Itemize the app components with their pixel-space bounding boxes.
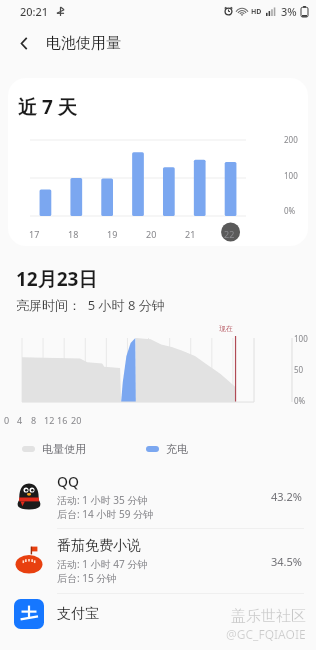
staticText: 0% (294, 395, 306, 406)
button[interactable]: 近 7 天 (8, 78, 308, 246)
staticText: 50 (294, 364, 304, 375)
button[interactable]: Back (8, 27, 40, 59)
staticText: 充电 (166, 442, 188, 456)
button[interactable]: 支付宝 (0, 594, 316, 634)
staticText: 支付宝 (57, 605, 99, 623)
staticText: 34.5% (271, 554, 302, 569)
staticText: 17 (29, 228, 40, 240)
staticText: QQ (57, 472, 79, 491)
staticText: 4 (17, 414, 23, 426)
staticText: 电池使用量 (46, 34, 121, 53)
staticText: 亮屏时间： 5 小时 8 分钟 (16, 296, 165, 314)
staticText: 16 (57, 414, 68, 426)
staticText: 20:21 (20, 4, 49, 19)
staticText: 现在 (219, 324, 233, 333)
staticText: 20 (71, 414, 82, 426)
staticText: 18 (68, 228, 79, 240)
staticText: 200 (284, 134, 298, 145)
button[interactable]: 番茄免费小说 (0, 529, 316, 593)
staticText: @GC_FQIAOIE (226, 626, 306, 642)
staticText: 后台: 14 小时 59 分钟 (57, 507, 153, 521)
staticText: 近 7 天 (18, 94, 77, 120)
staticText: 8 (31, 414, 37, 426)
staticText: 番茄免费小说 (57, 537, 141, 555)
staticText: 43.2% (271, 489, 302, 504)
button[interactable]: QQ (0, 464, 316, 528)
staticText: 100 (284, 170, 298, 181)
staticText: 12月23日 (16, 266, 98, 292)
staticText: 12 (44, 414, 55, 426)
staticText: 0% (284, 205, 296, 216)
staticText: 20 (146, 228, 157, 240)
staticText: 100 (294, 333, 308, 344)
staticText: 电量使用 (42, 442, 86, 456)
staticText: 3% (281, 4, 297, 19)
staticText: 22 (224, 228, 235, 240)
staticText: 活动: 1 小时 35 分钟 (57, 493, 148, 507)
staticText: 活动: 1 小时 47 分钟 (57, 557, 148, 571)
staticText: 19 (107, 228, 118, 240)
staticText: 0 (4, 414, 10, 426)
staticText: 盖乐世社区 (231, 607, 306, 626)
staticText: 后台: 15 分钟 (57, 571, 117, 585)
staticText: 21 (185, 228, 196, 240)
staticText: HD (251, 7, 262, 17)
